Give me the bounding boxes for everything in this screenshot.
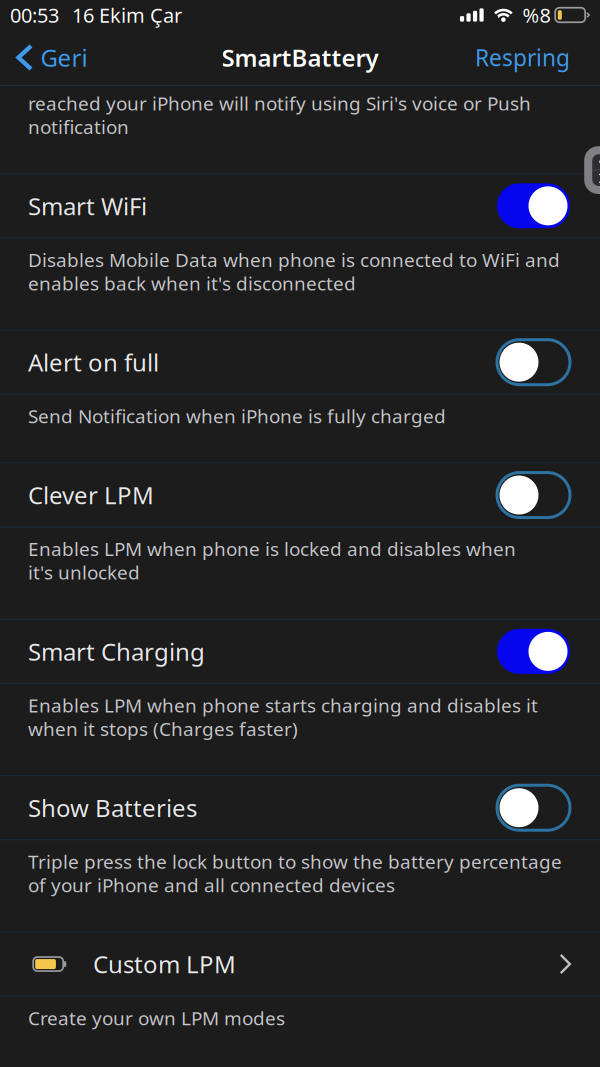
staticText: Smart Charging [28,636,205,667]
staticText: Send Notification when iPhone is fully c… [28,404,446,428]
staticText: Respring [475,43,570,72]
button[interactable]: Geri [0,34,87,81]
button[interactable]: Alert on full [0,331,600,394]
button[interactable]: Custom LPM [0,932,600,995]
staticText: reached your iPhone will notify using Si… [28,91,531,138]
staticText: Create your own LPM modes [28,1006,285,1029]
staticText: %8 [523,2,551,28]
button[interactable]: Smart WiFi [0,174,600,237]
staticText: 00:53 [10,2,59,28]
button[interactable]: Assistive Touch [584,146,600,194]
staticText: Triple press the lock button to show the… [28,850,562,897]
staticText: SmartBattery [221,42,378,73]
button[interactable]: Respring [475,35,600,80]
staticText: Enables LPM when phone starts charging a… [28,693,538,740]
staticText: Clever LPM [28,479,154,511]
staticText: Custom LPM [93,948,236,980]
staticText: Disables Mobile Data when phone is conne… [28,248,560,295]
staticText: 16 Ekim Çar [72,2,182,28]
staticText: Geri [40,42,87,73]
button[interactable]: Smart Charging [0,620,600,683]
staticText: Alert on full [28,347,159,378]
staticText: Smart WiFi [28,190,147,221]
button[interactable]: Show Batteries [0,776,600,839]
staticText: Enables LPM when phone is locked and dis… [28,537,516,584]
staticText: Show Batteries [28,792,197,823]
button[interactable]: Clever LPM [0,463,600,526]
